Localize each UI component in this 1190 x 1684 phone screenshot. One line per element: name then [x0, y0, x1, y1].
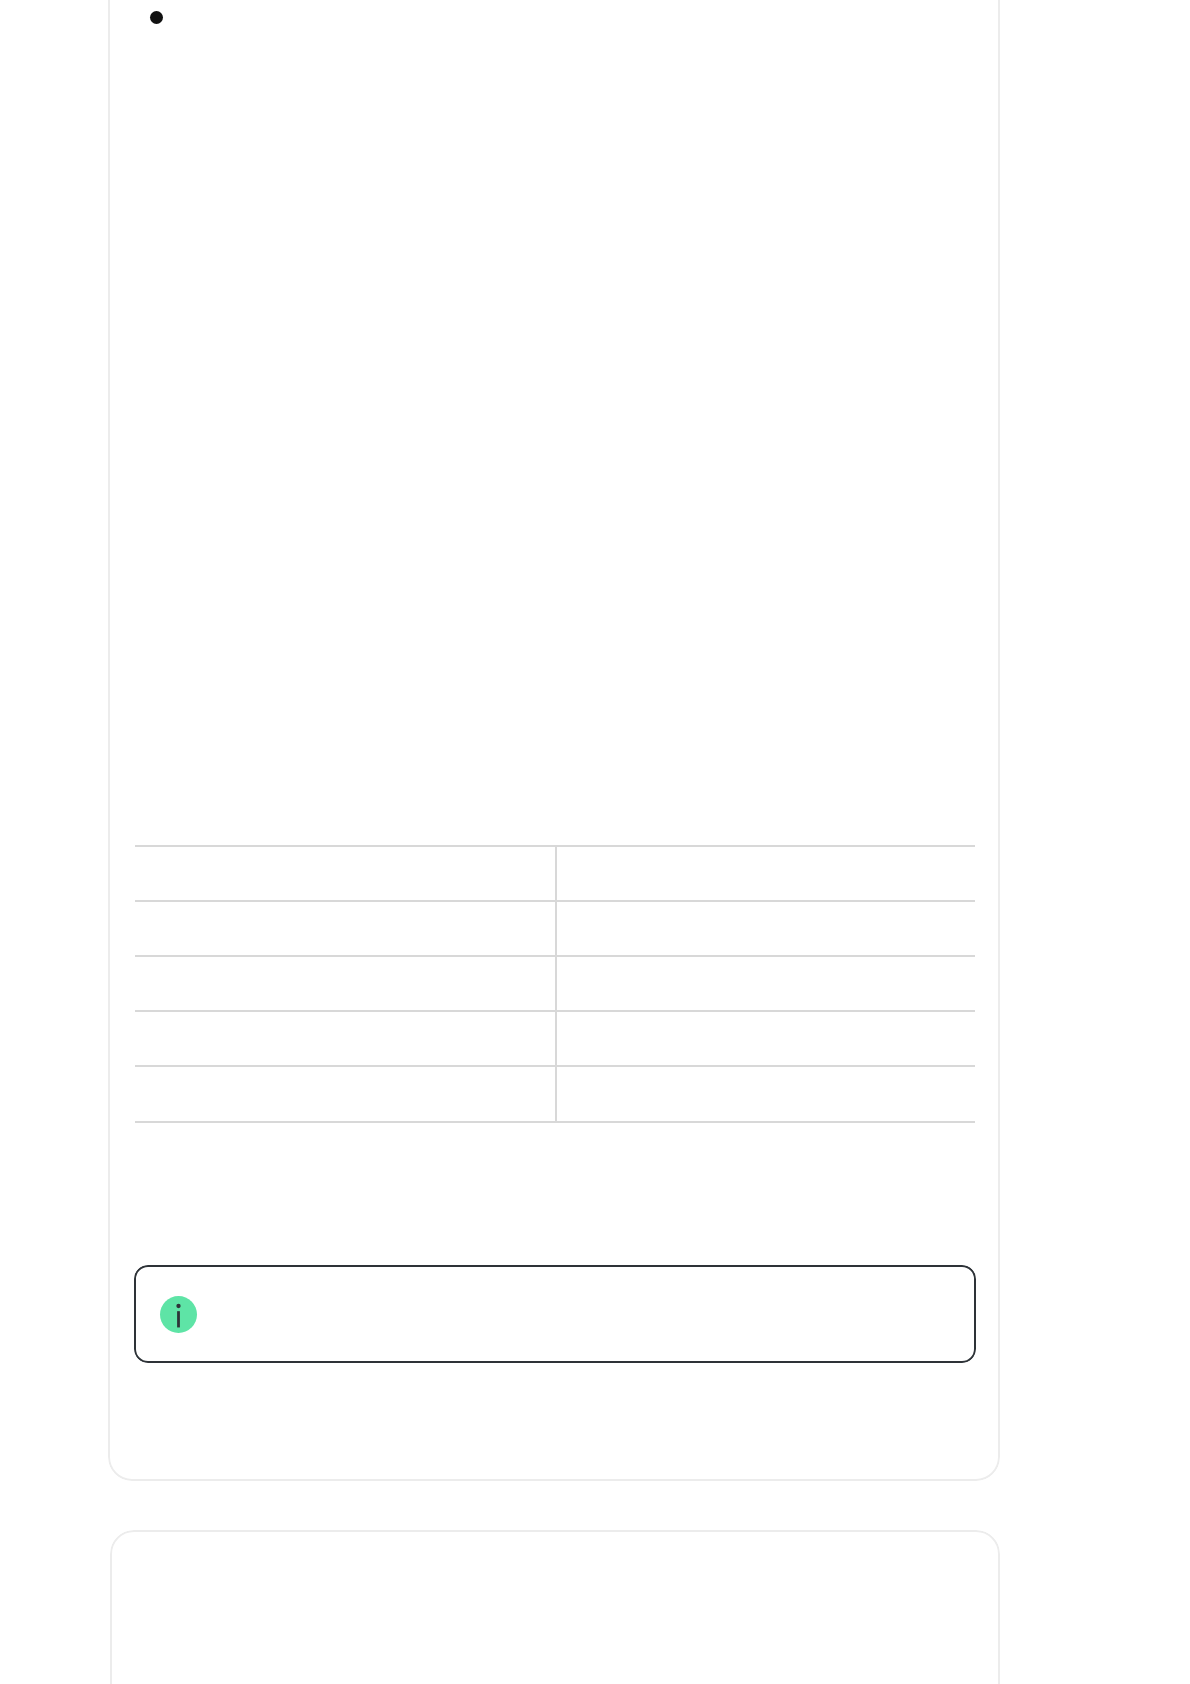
button[interactable]: Information note [108, 0, 1000, 1481]
button[interactable]: Information note [134, 1265, 976, 1363]
